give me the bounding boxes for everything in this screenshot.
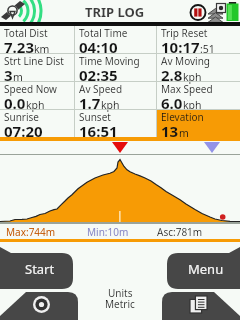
button[interactable]: Elevation [157,110,240,138]
button[interactable]: Time Moving [75,54,156,81]
staticText: Min:10m [87,225,129,239]
button[interactable]: Max Speed [157,82,240,109]
staticText: 13 [161,121,179,141]
button[interactable]: Trip Reset [157,26,240,53]
button[interactable]: Sunset [75,110,156,138]
staticText: 2.8 [161,65,183,85]
staticText: Units [108,286,133,300]
button[interactable]: Record track [0,290,78,320]
staticText: Av Speed [79,82,123,96]
staticText: Strt Line Dist [4,54,64,68]
button[interactable]: Menu [167,246,240,289]
staticText: Elevation [161,110,204,124]
staticText: kph [26,98,45,112]
staticText: 10:17 [161,37,200,57]
staticText: kph [101,98,120,112]
staticText: Time Moving [79,54,140,68]
staticText: Total Time [79,26,128,40]
staticText: Speed Now [4,82,57,96]
staticText: Start [25,260,55,278]
staticText: 6.0 [161,93,183,113]
staticText: 1.7 [79,93,101,113]
button[interactable]: Av Moving [157,54,240,81]
button[interactable]: Av Speed [75,82,156,109]
staticText: 3 [4,65,13,85]
staticText: Total Dist [4,26,48,40]
staticText: 04:10 [79,37,118,57]
staticText: Metric [105,297,135,311]
staticText: Max:744m [6,225,56,239]
staticText: 7.23 [4,37,34,57]
staticText: Max Speed [161,82,213,96]
staticText: m [179,126,189,140]
staticText: Menu [188,260,224,278]
button[interactable]: Pages [162,290,240,320]
staticText: Trip Reset [161,26,208,40]
staticText: kph [183,70,202,84]
button[interactable]: Start [0,246,73,289]
button[interactable]: Total Time [75,26,156,53]
staticText: :51 [200,42,215,56]
staticText: TRIP LOG [85,3,145,21]
staticText: Sunset [79,110,111,124]
staticText: 0.0 [4,93,26,113]
staticText: m [13,70,23,84]
staticText: 02:35 [79,65,118,85]
staticText: Av Moving [161,54,210,68]
button[interactable]: Strt Line Dist [0,54,74,81]
staticText: Asc:781m [157,225,203,239]
button[interactable]: Speed Now [0,82,74,109]
staticText: 07:20 [4,121,43,141]
button[interactable]: Total Dist [0,26,74,53]
staticText: kph [183,98,202,112]
button[interactable]: Sunrise [0,110,74,138]
staticText: Sunrise [4,110,39,124]
staticText: 16:51 [79,121,118,141]
staticText: km [34,42,50,56]
